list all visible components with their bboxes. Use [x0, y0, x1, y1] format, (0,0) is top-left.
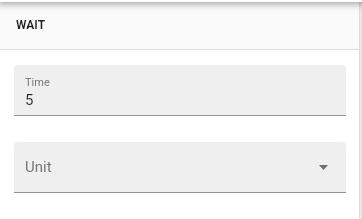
- button[interactable]: WAIT: [0, 0, 359, 49]
- staticText: WAIT: [16, 18, 46, 32]
- staticText: Unit: [25, 158, 319, 176]
- button[interactable]: Unit dropdown: [14, 142, 346, 192]
- button[interactable]: Time: [14, 65, 346, 115]
- staticText: 5: [25, 91, 34, 109]
- staticText: Time: [25, 76, 50, 89]
